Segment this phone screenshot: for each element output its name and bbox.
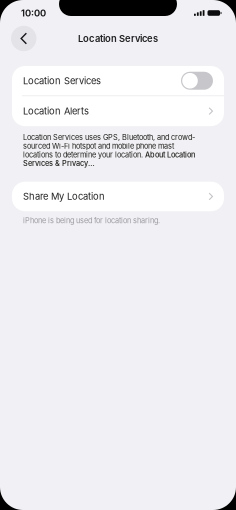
staticText: Location Services: [78, 33, 158, 44]
button[interactable]: Location Alerts: [12, 96, 224, 126]
staticText: iPhone is being used for location sharin…: [23, 216, 160, 225]
button[interactable]: Share My Location: [12, 182, 224, 211]
staticText: Location Alerts: [23, 105, 89, 117]
staticText: Location Services: [23, 75, 101, 86]
staticText: Location Services uses GPS, Bluetooth, a…: [23, 133, 195, 168]
staticText: 10:00: [21, 7, 46, 19]
button[interactable]: Back: [11, 26, 36, 51]
button[interactable]: Location Services: [181, 72, 213, 90]
staticText: Share My Location: [23, 191, 105, 202]
